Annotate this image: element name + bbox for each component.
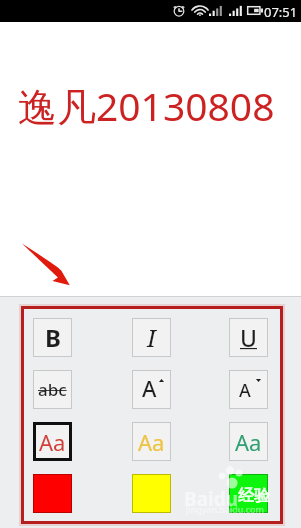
button[interactable]: Underline: [229, 318, 268, 357]
staticText: abc: [38, 378, 67, 401]
button[interactable]: Strikethrough: [33, 370, 72, 409]
staticText: U: [240, 322, 257, 353]
staticText: I: [147, 321, 156, 354]
button[interactable]: Decrease font size: [229, 370, 268, 409]
staticText: Aa: [235, 427, 262, 457]
button[interactable]: Italic: [132, 318, 171, 357]
staticText: 07:51: [264, 3, 298, 21]
staticText: Aa: [138, 427, 165, 457]
staticText: 经验: [238, 486, 270, 506]
button[interactable]: Yellow text colour: [132, 422, 171, 461]
staticText: jingyan.baidu.com: [186, 503, 264, 515]
staticText: A: [142, 373, 157, 399]
button[interactable]: Red text colour: [33, 422, 72, 461]
staticText: Aa: [39, 427, 66, 457]
button[interactable]: Yellow highlight: [132, 474, 171, 513]
button[interactable]: Green text colour: [229, 422, 268, 461]
button[interactable]: Green highlight: [229, 474, 268, 513]
button[interactable]: Bold: [33, 318, 72, 357]
staticText: Baidu: [184, 486, 239, 512]
staticText: B: [45, 321, 61, 354]
staticText: 逸凡20130808: [18, 79, 275, 132]
button[interactable]: Red highlight: [33, 474, 72, 513]
button[interactable]: Increase font size: [132, 370, 171, 409]
staticText: A: [239, 378, 251, 403]
